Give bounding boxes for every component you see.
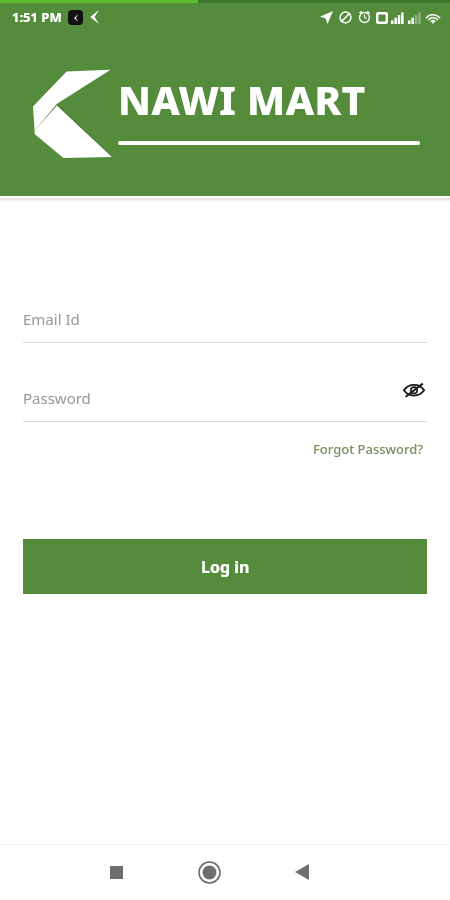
button[interactable]: Show password <box>401 377 427 403</box>
button[interactable]: Recent apps <box>92 848 140 896</box>
button[interactable]: Forgot Password? <box>309 436 428 462</box>
button[interactable]: Email Id <box>23 304 427 334</box>
staticText: Log in <box>201 556 250 578</box>
staticText: 1:51 PM <box>12 8 62 26</box>
button[interactable]: Log in <box>23 539 427 594</box>
staticText: NAWI MART <box>118 72 366 126</box>
button[interactable]: Password <box>23 383 427 413</box>
staticText: Password <box>23 388 91 408</box>
staticText: Email Id <box>23 309 80 329</box>
button[interactable]: Home <box>185 848 233 896</box>
staticText: Forgot Password? <box>313 440 424 458</box>
button[interactable]: Back <box>278 848 326 896</box>
